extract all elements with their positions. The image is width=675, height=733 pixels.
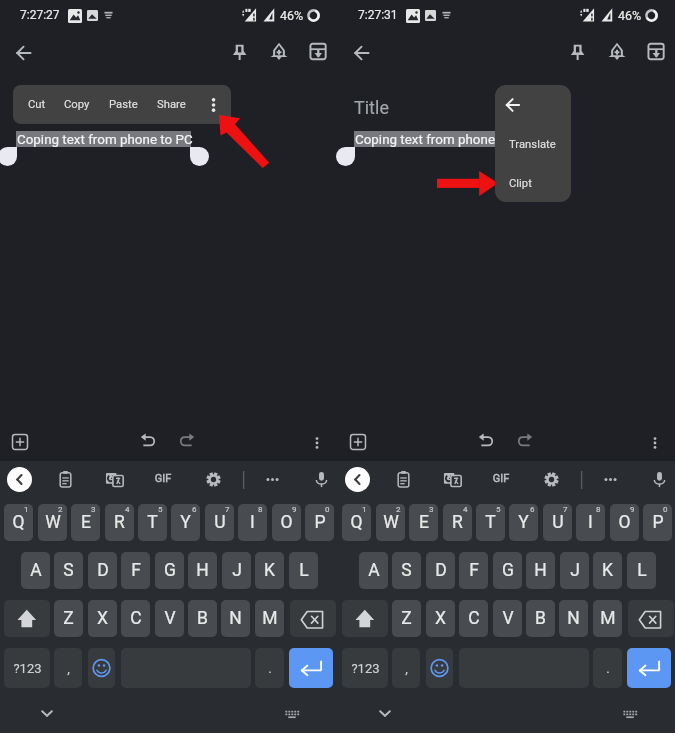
button[interactable]: Enter [289,648,333,688]
button[interactable]: D [88,552,117,589]
button[interactable]: ?123 [4,648,50,688]
button[interactable]: Switch keyboard [619,702,641,724]
button[interactable]: Back [500,92,526,118]
button[interactable]: Collapse toolbar [345,467,370,492]
button[interactable]: X [88,600,117,637]
button[interactable]: B [188,600,217,637]
button[interactable]: A [359,552,388,589]
button[interactable]: R [443,504,472,541]
button[interactable]: , [392,648,420,688]
button[interactable]: Z [54,600,83,637]
button[interactable]: C [121,600,150,637]
button[interactable]: F [459,552,488,589]
button[interactable]: Voice input [312,470,331,489]
button[interactable]: X [426,600,455,637]
button[interactable]: V [155,600,184,637]
button[interactable]: Settings [205,471,222,488]
button[interactable]: G [155,552,184,589]
button[interactable]: Collapse toolbar [7,467,32,492]
button[interactable]: Reminder [605,39,629,63]
button[interactable]: Voice input [650,470,669,489]
button[interactable]: Share [157,85,186,124]
button[interactable]: P [305,504,334,541]
button[interactable]: Switch keyboard [281,702,303,724]
button[interactable]: N [221,600,250,637]
button[interactable]: N [559,600,588,637]
button[interactable]: M [593,600,622,637]
button[interactable]: K [255,552,284,589]
button[interactable]: Settings [543,471,560,488]
button[interactable]: Reminder [267,39,291,63]
button[interactable]: H [526,552,555,589]
button[interactable]: J [222,552,251,589]
button[interactable]: Redo [516,431,534,449]
button[interactable]: More options [306,432,328,454]
button[interactable]: Back [348,39,376,67]
button[interactable]: Z [392,600,421,637]
button[interactable]: More [601,470,620,489]
button[interactable]: Shift [4,600,50,637]
button[interactable]: O [272,504,301,541]
button[interactable]: Y [509,504,538,541]
button[interactable]: GIF [151,472,175,488]
button[interactable]: Clipboard [394,470,413,489]
button[interactable]: . [255,648,284,688]
button[interactable]: L [627,552,656,589]
button[interactable]: Emoji [88,648,115,688]
button[interactable]: Undo [477,431,495,449]
button[interactable]: More options [644,432,666,454]
button[interactable]: W [38,504,67,541]
button[interactable]: A [21,552,50,589]
button[interactable]: Hide keyboard [36,702,58,724]
button[interactable]: ?123 [342,648,388,688]
button[interactable]: GIF [489,472,513,488]
button[interactable]: . [593,648,622,688]
button[interactable]: Y [171,504,200,541]
button[interactable]: Shift [342,600,388,637]
button[interactable]: T [476,504,505,541]
button[interactable]: I [576,504,605,541]
button[interactable]: C [459,600,488,637]
button[interactable]: Translate [105,470,124,489]
button[interactable]: I [238,504,267,541]
button[interactable]: U [543,504,572,541]
button[interactable]: D [426,552,455,589]
button[interactable]: J [560,552,589,589]
button[interactable]: T [138,504,167,541]
button[interactable]: Copy [64,85,90,124]
button[interactable]: K [593,552,622,589]
button[interactable]: Add [347,431,369,453]
button[interactable]: Pin [566,39,590,63]
button[interactable]: Redo [178,431,196,449]
button[interactable]: E [71,504,100,541]
button[interactable]: P [643,504,672,541]
button[interactable]: G [493,552,522,589]
button[interactable]: Q [342,504,371,541]
button[interactable]: Enter [627,648,671,688]
button[interactable]: More [263,470,282,489]
button[interactable]: B [526,600,555,637]
button[interactable]: S [392,552,421,589]
button[interactable]: Backspace [290,600,336,637]
button[interactable]: O [610,504,639,541]
button[interactable]: , [54,648,82,688]
button[interactable]: Translate [443,470,462,489]
button[interactable]: Undo [139,431,157,449]
button[interactable]: Back [10,39,38,67]
button[interactable]: Q [4,504,33,541]
button[interactable]: Translate [495,130,571,158]
button[interactable]: Archive [306,39,330,63]
button[interactable]: S [54,552,83,589]
button[interactable]: Pin [228,39,252,63]
button[interactable]: Emoji [426,648,453,688]
button[interactable]: R [105,504,134,541]
button[interactable]: M [255,600,284,637]
button[interactable]: E [409,504,438,541]
button[interactable]: Backspace [628,600,674,637]
button[interactable]: L [289,552,318,589]
button[interactable]: Paste [109,85,138,124]
button[interactable]: Archive [644,39,668,63]
button[interactable]: Add [9,431,31,453]
